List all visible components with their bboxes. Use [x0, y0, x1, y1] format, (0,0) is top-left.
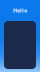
staticText: Hello	[13, 7, 27, 14]
